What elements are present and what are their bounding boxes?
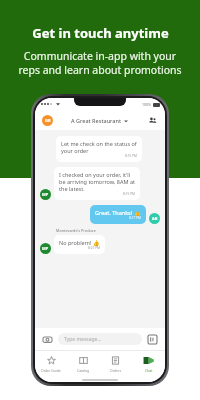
- staticText: MP: [42, 246, 49, 251]
- button[interactable]: Catalog: [67, 351, 99, 377]
- button[interactable]: Contacts: [146, 114, 158, 126]
- staticText: 8:15 PM: [125, 154, 137, 158]
- staticText: Let me check on the status of your order: [61, 140, 137, 154]
- staticText: Montevarde's Produce: [56, 228, 96, 233]
- button[interactable]: Avatar MP: [40, 189, 51, 200]
- staticText: 100%: [142, 102, 151, 107]
- staticText: Communicate in-app with your reps and le…: [18, 49, 182, 77]
- button[interactable]: Profile avatar: [42, 115, 53, 126]
- button[interactable]: Great. Thanks! 👍: [90, 205, 146, 224]
- staticText: Great. Thanks! 👍: [95, 209, 141, 216]
- staticText: Catalog: [77, 368, 90, 373]
- staticText: 8:21 PM: [88, 246, 100, 250]
- staticText: A Great Restaurant: [71, 117, 122, 124]
- button[interactable]: Orders: [99, 351, 132, 377]
- staticText: Type message...: [64, 336, 102, 343]
- button[interactable]: Attach: [146, 333, 159, 346]
- button[interactable]: Camera: [41, 333, 54, 346]
- staticText: 8:17 PM: [129, 216, 141, 220]
- button[interactable]: No problem! 👍: [54, 235, 105, 254]
- staticText: Get in touch anytime: [32, 24, 169, 42]
- button[interactable]: Avatar MP: [40, 243, 51, 254]
- staticText: I checked on your order, it'll be arrivi…: [59, 171, 135, 192]
- staticText: Chat: [145, 368, 153, 373]
- staticText: GR: [45, 118, 51, 123]
- button[interactable]: Order Guide: [35, 351, 67, 377]
- button[interactable]: Let me check on the status of your order: [56, 136, 142, 162]
- staticText: AB: [152, 216, 158, 221]
- staticText: Orders: [110, 368, 122, 373]
- button[interactable]: Chat: [132, 351, 165, 377]
- button[interactable]: I checked on your order, it'll be arrivi…: [54, 167, 140, 200]
- staticText: No problem! 👍: [59, 239, 100, 246]
- button[interactable]: Type message...: [58, 333, 142, 345]
- staticText: Order Guide: [41, 368, 61, 373]
- staticText: 8:15 PM: [123, 192, 135, 196]
- staticText: MP: [42, 192, 49, 197]
- button[interactable]: A Great Restaurant: [71, 117, 128, 124]
- button[interactable]: Avatar AB: [149, 213, 160, 224]
